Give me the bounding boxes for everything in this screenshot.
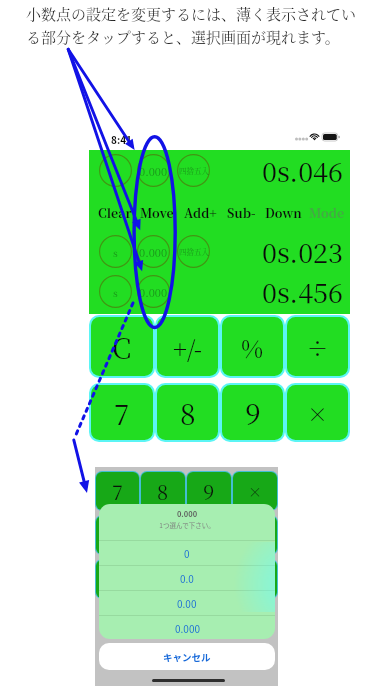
staticText: 8	[157, 477, 169, 506]
staticText: 0.0	[180, 571, 194, 585]
button[interactable]: 4	[96, 516, 139, 554]
button[interactable]: 7	[91, 385, 153, 440]
button[interactable]: 1	[96, 560, 139, 598]
staticText: 0.000	[139, 284, 168, 300]
staticText: キャンセル	[163, 650, 211, 664]
staticText: 0	[184, 546, 190, 560]
button[interactable]: 0.000	[137, 235, 170, 268]
button[interactable]: 3	[187, 560, 231, 598]
button[interactable]: 2	[141, 560, 185, 598]
button[interactable]: 9	[222, 385, 283, 440]
button[interactable]: キャンセル	[99, 643, 275, 670]
button[interactable]: Down	[262, 202, 304, 223]
button[interactable]: 5	[141, 516, 185, 554]
button[interactable]: C	[91, 317, 153, 376]
staticText: 0.00	[177, 596, 197, 610]
staticText: 0.000	[99, 508, 275, 519]
staticText: 6	[203, 521, 215, 550]
staticText: -	[253, 525, 258, 545]
button[interactable]: s	[99, 235, 132, 268]
staticText: 8	[180, 393, 196, 433]
button[interactable]: 0	[99, 541, 275, 565]
button[interactable]: 四捨五入	[177, 235, 210, 268]
staticText: ×	[307, 398, 328, 428]
staticText: Mode	[309, 204, 345, 222]
staticText: Clear	[98, 204, 132, 222]
button[interactable]: ÷	[287, 317, 348, 376]
staticText: 9	[203, 477, 215, 506]
staticText: 8:41	[111, 132, 132, 146]
button[interactable]: Move	[136, 202, 178, 223]
staticText: 小数点の設定を変更するには、薄く表示されてい る部分をタップすると、選択画面が現…	[26, 3, 357, 48]
button[interactable]: 8	[157, 385, 218, 440]
button[interactable]: 9	[187, 472, 231, 510]
staticText: +/-	[173, 330, 203, 364]
staticText: 9	[245, 393, 261, 433]
button[interactable]: 0.00	[99, 591, 275, 615]
staticText: 7	[114, 393, 130, 433]
staticText: ×	[248, 481, 262, 501]
button[interactable]: 四捨五入	[177, 154, 210, 187]
staticText: Sub-	[227, 204, 256, 222]
button[interactable]: s	[99, 275, 132, 308]
staticText: 四捨五入	[179, 165, 209, 176]
staticText: 7	[112, 477, 123, 506]
button[interactable]: Mode	[306, 202, 348, 223]
staticText: ÷	[307, 332, 328, 362]
button[interactable]: Sub-	[220, 202, 262, 223]
staticText: 0.000	[175, 621, 200, 635]
button[interactable]: -	[233, 516, 277, 554]
button[interactable]: 0.0	[99, 566, 275, 590]
staticText: 3	[203, 565, 215, 594]
button[interactable]: +	[233, 560, 277, 598]
button[interactable]: %	[222, 317, 283, 376]
button[interactable]: 0.000	[137, 275, 170, 308]
staticText: 0s.456	[213, 272, 343, 311]
button[interactable]: Add+	[179, 202, 221, 223]
button[interactable]: 8	[141, 472, 185, 510]
staticText: 0s.023	[213, 232, 343, 271]
staticText: s	[113, 245, 118, 259]
staticText: 0.000	[139, 163, 168, 179]
button[interactable]: ×	[287, 385, 348, 440]
button[interactable]: ×	[233, 472, 277, 510]
staticText: 4	[112, 521, 124, 550]
staticText: 5	[157, 521, 169, 550]
staticText: Down	[265, 204, 302, 222]
staticText: 2	[157, 565, 169, 594]
button[interactable]: option	[99, 154, 132, 187]
staticText: Move	[140, 204, 174, 222]
staticText: %	[241, 330, 264, 364]
staticText: s	[113, 285, 118, 299]
staticText: 1つ選んで下さい。	[99, 520, 275, 529]
staticText: 1	[113, 565, 123, 594]
staticText: 四捨五入	[179, 246, 209, 257]
staticText: Add+	[184, 204, 217, 222]
button[interactable]: 6	[187, 516, 231, 554]
button[interactable]: Clear	[94, 202, 136, 223]
button[interactable]: 0.000	[99, 616, 275, 639]
staticText: 0s.046	[213, 151, 343, 190]
button[interactable]: 0.000	[137, 154, 170, 187]
staticText: 0.000	[139, 244, 168, 260]
button[interactable]: 7	[96, 472, 139, 510]
staticText: C	[112, 327, 132, 367]
button[interactable]: +/-	[157, 317, 218, 376]
